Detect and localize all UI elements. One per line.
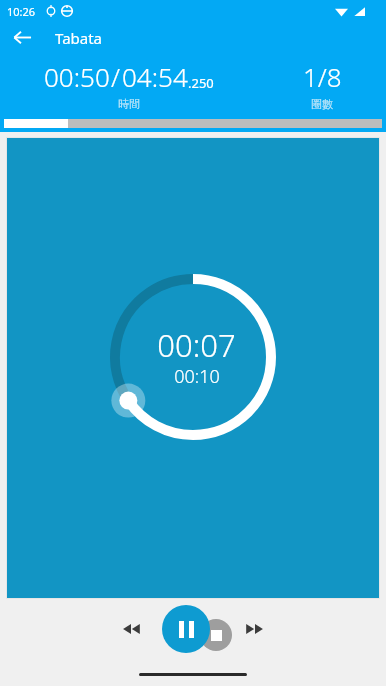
staticText: 圈數 [311, 97, 333, 111]
staticText: 10:26 [7, 4, 36, 19]
button[interactable]: Stop [200, 619, 232, 651]
staticText: 00:07 [157, 324, 236, 366]
staticText: 04:54 [122, 59, 188, 94]
button[interactable]: Previous [111, 609, 151, 649]
button[interactable]: Next [235, 609, 275, 649]
staticText: .250 [188, 74, 214, 92]
staticText: 1/8 [303, 59, 342, 94]
staticText: Tabata [55, 28, 103, 48]
staticText: 00:10 [174, 364, 220, 389]
button[interactable]: Back [0, 22, 44, 53]
staticText: / [111, 59, 121, 94]
button[interactable]: Pause [162, 605, 210, 653]
button[interactable]: 00:07 [7, 138, 379, 598]
staticText: 00:50 [44, 59, 110, 94]
staticText: 時間 [118, 97, 140, 111]
